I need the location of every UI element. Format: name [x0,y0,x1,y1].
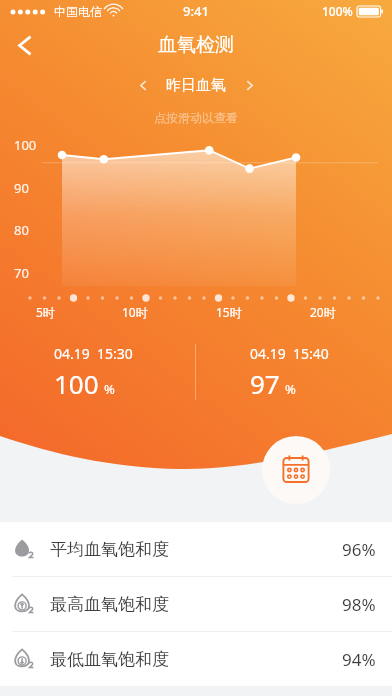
staticText: 15时 [216,304,242,320]
staticText: 5时 [36,304,55,320]
button[interactable]: Next day [234,70,264,100]
staticText: 血氧检测 [158,33,234,57]
staticText: 20时 [310,304,336,320]
staticText: 94% [342,648,376,671]
staticText: 中国电信 [54,4,102,19]
staticText: 98% [342,593,376,616]
staticText: 70 [14,264,29,282]
staticText: 80 [14,221,29,239]
staticText: 100% [322,3,353,19]
button[interactable]: Back [0,22,50,68]
staticText: 96% [342,538,376,561]
staticText: 点按滑动以查看 [0,110,392,125]
staticText: 昨日血氧 [166,76,226,95]
button[interactable]: Previous day [128,70,158,100]
staticText: 100 [14,136,37,154]
staticText: 04.19 15:40 [250,344,329,363]
staticText: 100 [54,366,99,401]
staticText: 97 [250,366,280,401]
staticText: % [285,380,296,398]
staticText: 10时 [122,304,148,320]
staticText: 最高血氧饱和度 [50,594,169,615]
staticText: % [104,380,115,398]
button[interactable]: Calendar [262,436,330,504]
staticText: 04.19 15:30 [54,344,133,363]
button[interactable]: 最低血氧饱和度 [0,632,392,686]
staticText: 90 [14,179,29,197]
staticText: 平均血氧饱和度 [50,539,169,560]
staticText: 9:41 [183,2,209,20]
button[interactable]: 平均血氧饱和度 [0,522,392,576]
button[interactable]: 最高血氧饱和度 [0,577,392,631]
staticText: 最低血氧饱和度 [50,649,169,670]
